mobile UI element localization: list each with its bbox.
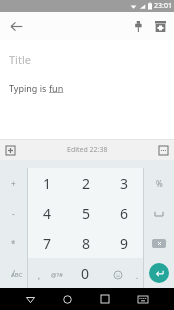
staticText: / <box>12 268 15 279</box>
button[interactable]: 5 <box>67 198 105 228</box>
button[interactable]: 7 <box>28 228 67 258</box>
button[interactable]: * <box>0 228 27 258</box>
staticText: 9 <box>120 234 129 253</box>
staticText: Typing is <box>9 82 49 94</box>
staticText: ABC <box>11 271 23 279</box>
staticText: 1 <box>43 174 52 193</box>
button[interactable]: Back <box>5 15 27 37</box>
staticText: 23:01 <box>154 1 172 11</box>
staticText: 0 <box>81 264 90 283</box>
button[interactable]: Home <box>49 288 86 310</box>
staticText: - <box>12 208 15 219</box>
button[interactable]: Pin note <box>127 15 149 37</box>
button[interactable]: Add <box>2 142 18 158</box>
button[interactable]: 8 <box>67 228 105 258</box>
button[interactable]: / <box>0 258 27 288</box>
staticText: Edited 22:38 <box>67 145 108 155</box>
staticText: 5 <box>82 204 91 223</box>
button[interactable]: More options <box>155 142 171 158</box>
button[interactable]: . <box>130 262 144 288</box>
staticText: * <box>11 238 16 249</box>
button[interactable]: 6 <box>105 198 143 228</box>
staticText: @?# <box>51 271 63 279</box>
button[interactable]: Recent apps <box>86 288 124 310</box>
button[interactable]: + <box>0 168 27 198</box>
staticText: % <box>156 178 163 189</box>
button[interactable]: , <box>33 262 46 288</box>
staticText: . <box>136 270 139 281</box>
button[interactable] <box>144 198 174 228</box>
staticText: Title <box>9 52 31 67</box>
staticText: 7 <box>43 234 52 253</box>
button[interactable]: Back <box>12 288 49 310</box>
button[interactable]: 4 <box>28 198 67 228</box>
button[interactable]: Enter <box>144 258 174 288</box>
button[interactable]: 0 <box>28 258 143 288</box>
staticText: + <box>11 178 16 189</box>
button[interactable]: 1 <box>28 168 67 198</box>
staticText: 4 <box>43 204 52 223</box>
button[interactable]: Switch keyboard <box>124 288 162 310</box>
staticText: , <box>38 270 41 281</box>
button[interactable]: 2 <box>67 168 105 198</box>
button[interactable]: @?# <box>46 262 68 288</box>
button[interactable]: 9 <box>105 228 143 258</box>
staticText: 2 <box>82 174 91 193</box>
staticText: 6 <box>120 204 129 223</box>
button[interactable]: Emoji <box>106 262 130 288</box>
staticText: 8 <box>82 234 91 253</box>
button[interactable]: % <box>144 168 174 198</box>
button[interactable]: Backspace <box>144 228 174 258</box>
button[interactable]: Archive <box>149 15 171 37</box>
button[interactable]: 3 <box>105 168 143 198</box>
staticText: 3 <box>120 174 129 193</box>
button[interactable]: ABC <box>0 262 33 288</box>
staticText: fun <box>49 82 64 94</box>
